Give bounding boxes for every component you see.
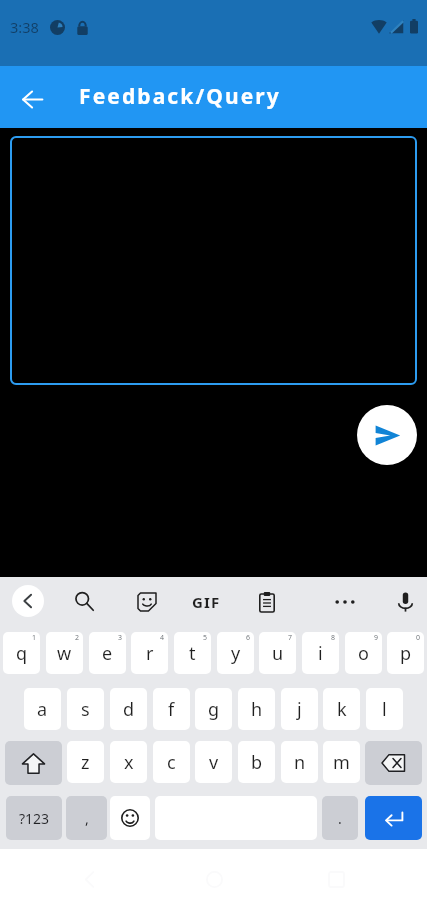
staticText: 1 bbox=[32, 633, 37, 643]
button[interactable]: Close toolbar bbox=[12, 585, 44, 617]
staticText: b bbox=[251, 750, 263, 775]
staticText: t bbox=[189, 641, 196, 666]
staticText: , bbox=[85, 809, 89, 828]
button[interactable]: Symbols bbox=[6, 796, 62, 840]
staticText: r bbox=[146, 641, 154, 666]
button[interactable]: v bbox=[195, 741, 232, 783]
button[interactable]: GIF bbox=[192, 592, 221, 612]
staticText: m bbox=[333, 750, 350, 775]
button[interactable]: q bbox=[3, 632, 40, 674]
staticText: 7 bbox=[288, 633, 293, 643]
staticText: 8 bbox=[331, 633, 336, 643]
button[interactable]: n bbox=[281, 741, 318, 783]
staticText: q bbox=[16, 641, 28, 666]
staticText: j bbox=[297, 697, 302, 722]
button[interactable]: e bbox=[89, 632, 126, 674]
button[interactable]: Clipboard bbox=[251, 586, 282, 617]
staticText: f bbox=[168, 697, 175, 722]
button[interactable]: Send bbox=[357, 405, 417, 465]
staticText: s bbox=[81, 697, 90, 722]
button[interactable]: t bbox=[174, 632, 211, 674]
staticText: o bbox=[358, 641, 369, 666]
button[interactable]: Period bbox=[322, 796, 358, 840]
button[interactable]: x bbox=[110, 741, 147, 783]
button[interactable]: l bbox=[366, 688, 403, 730]
button[interactable]: p bbox=[387, 632, 424, 674]
staticText: 2 bbox=[75, 633, 80, 643]
button[interactable]: o bbox=[345, 632, 382, 674]
staticText: u bbox=[272, 641, 284, 666]
staticText: 9 bbox=[374, 633, 379, 643]
staticText: i bbox=[318, 641, 323, 666]
staticText: ?123 bbox=[19, 809, 50, 828]
button[interactable]: Voice input bbox=[390, 586, 421, 617]
button[interactable]: w bbox=[46, 632, 83, 674]
button[interactable]: Stickers bbox=[131, 586, 162, 617]
button[interactable]: Emoji bbox=[110, 796, 150, 840]
staticText: a bbox=[37, 697, 48, 722]
staticText: e bbox=[102, 641, 113, 666]
staticText: 3:38 bbox=[10, 17, 39, 37]
staticText: 6 bbox=[246, 633, 251, 643]
staticText: Feedback/Query bbox=[79, 82, 281, 111]
button[interactable]: r bbox=[131, 632, 168, 674]
button[interactable]: Comma bbox=[66, 796, 107, 840]
staticText: d bbox=[123, 697, 135, 722]
button[interactable]: i bbox=[302, 632, 339, 674]
staticText: p bbox=[400, 641, 412, 666]
staticText: 5 bbox=[203, 633, 208, 643]
button[interactable]: z bbox=[67, 741, 104, 783]
button[interactable]: a bbox=[24, 688, 61, 730]
button[interactable]: Shift bbox=[5, 741, 62, 785]
staticText: h bbox=[251, 697, 263, 722]
staticText: v bbox=[209, 750, 219, 775]
button[interactable]: h bbox=[238, 688, 275, 730]
staticText: y bbox=[231, 641, 241, 666]
button[interactable]: More bbox=[329, 586, 360, 617]
button[interactable]: s bbox=[67, 688, 104, 730]
button[interactable]: f bbox=[153, 688, 190, 730]
staticText: w bbox=[57, 641, 72, 666]
staticText: x bbox=[124, 750, 134, 775]
button[interactable]: Search bbox=[69, 586, 100, 617]
button[interactable]: j bbox=[281, 688, 318, 730]
staticText: z bbox=[81, 750, 90, 775]
button[interactable]: Enter bbox=[365, 796, 422, 840]
button[interactable]: g bbox=[195, 688, 232, 730]
button[interactable]: y bbox=[217, 632, 254, 674]
button[interactable]: c bbox=[153, 741, 190, 783]
button[interactable]: Backspace bbox=[365, 741, 422, 785]
staticText: n bbox=[294, 750, 306, 775]
staticText: 3 bbox=[118, 633, 123, 643]
staticText: c bbox=[167, 750, 176, 775]
staticText: l bbox=[382, 697, 387, 722]
button[interactable]: m bbox=[323, 741, 360, 783]
button[interactable]: k bbox=[323, 688, 360, 730]
staticText: . bbox=[338, 809, 342, 828]
button[interactable]: Feedback text field bbox=[10, 136, 417, 385]
staticText: k bbox=[337, 697, 347, 722]
button[interactable]: u bbox=[259, 632, 296, 674]
staticText: 4 bbox=[160, 633, 165, 643]
button[interactable]: Back bbox=[14, 81, 50, 117]
staticText: 0 bbox=[416, 633, 421, 643]
staticText: g bbox=[208, 697, 220, 722]
button[interactable]: d bbox=[110, 688, 147, 730]
button[interactable]: b bbox=[238, 741, 275, 783]
